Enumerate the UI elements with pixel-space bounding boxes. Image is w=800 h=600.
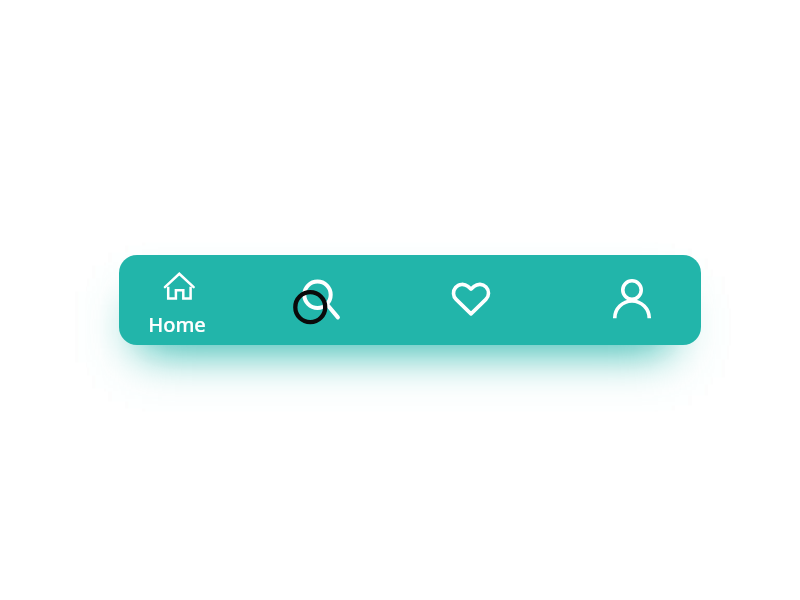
button[interactable]: Favorites [451,279,491,319]
staticText: Home [148,311,206,338]
button[interactable]: Home [146,268,208,338]
button[interactable]: Search [298,276,346,324]
button[interactable]: Profile [611,276,653,320]
